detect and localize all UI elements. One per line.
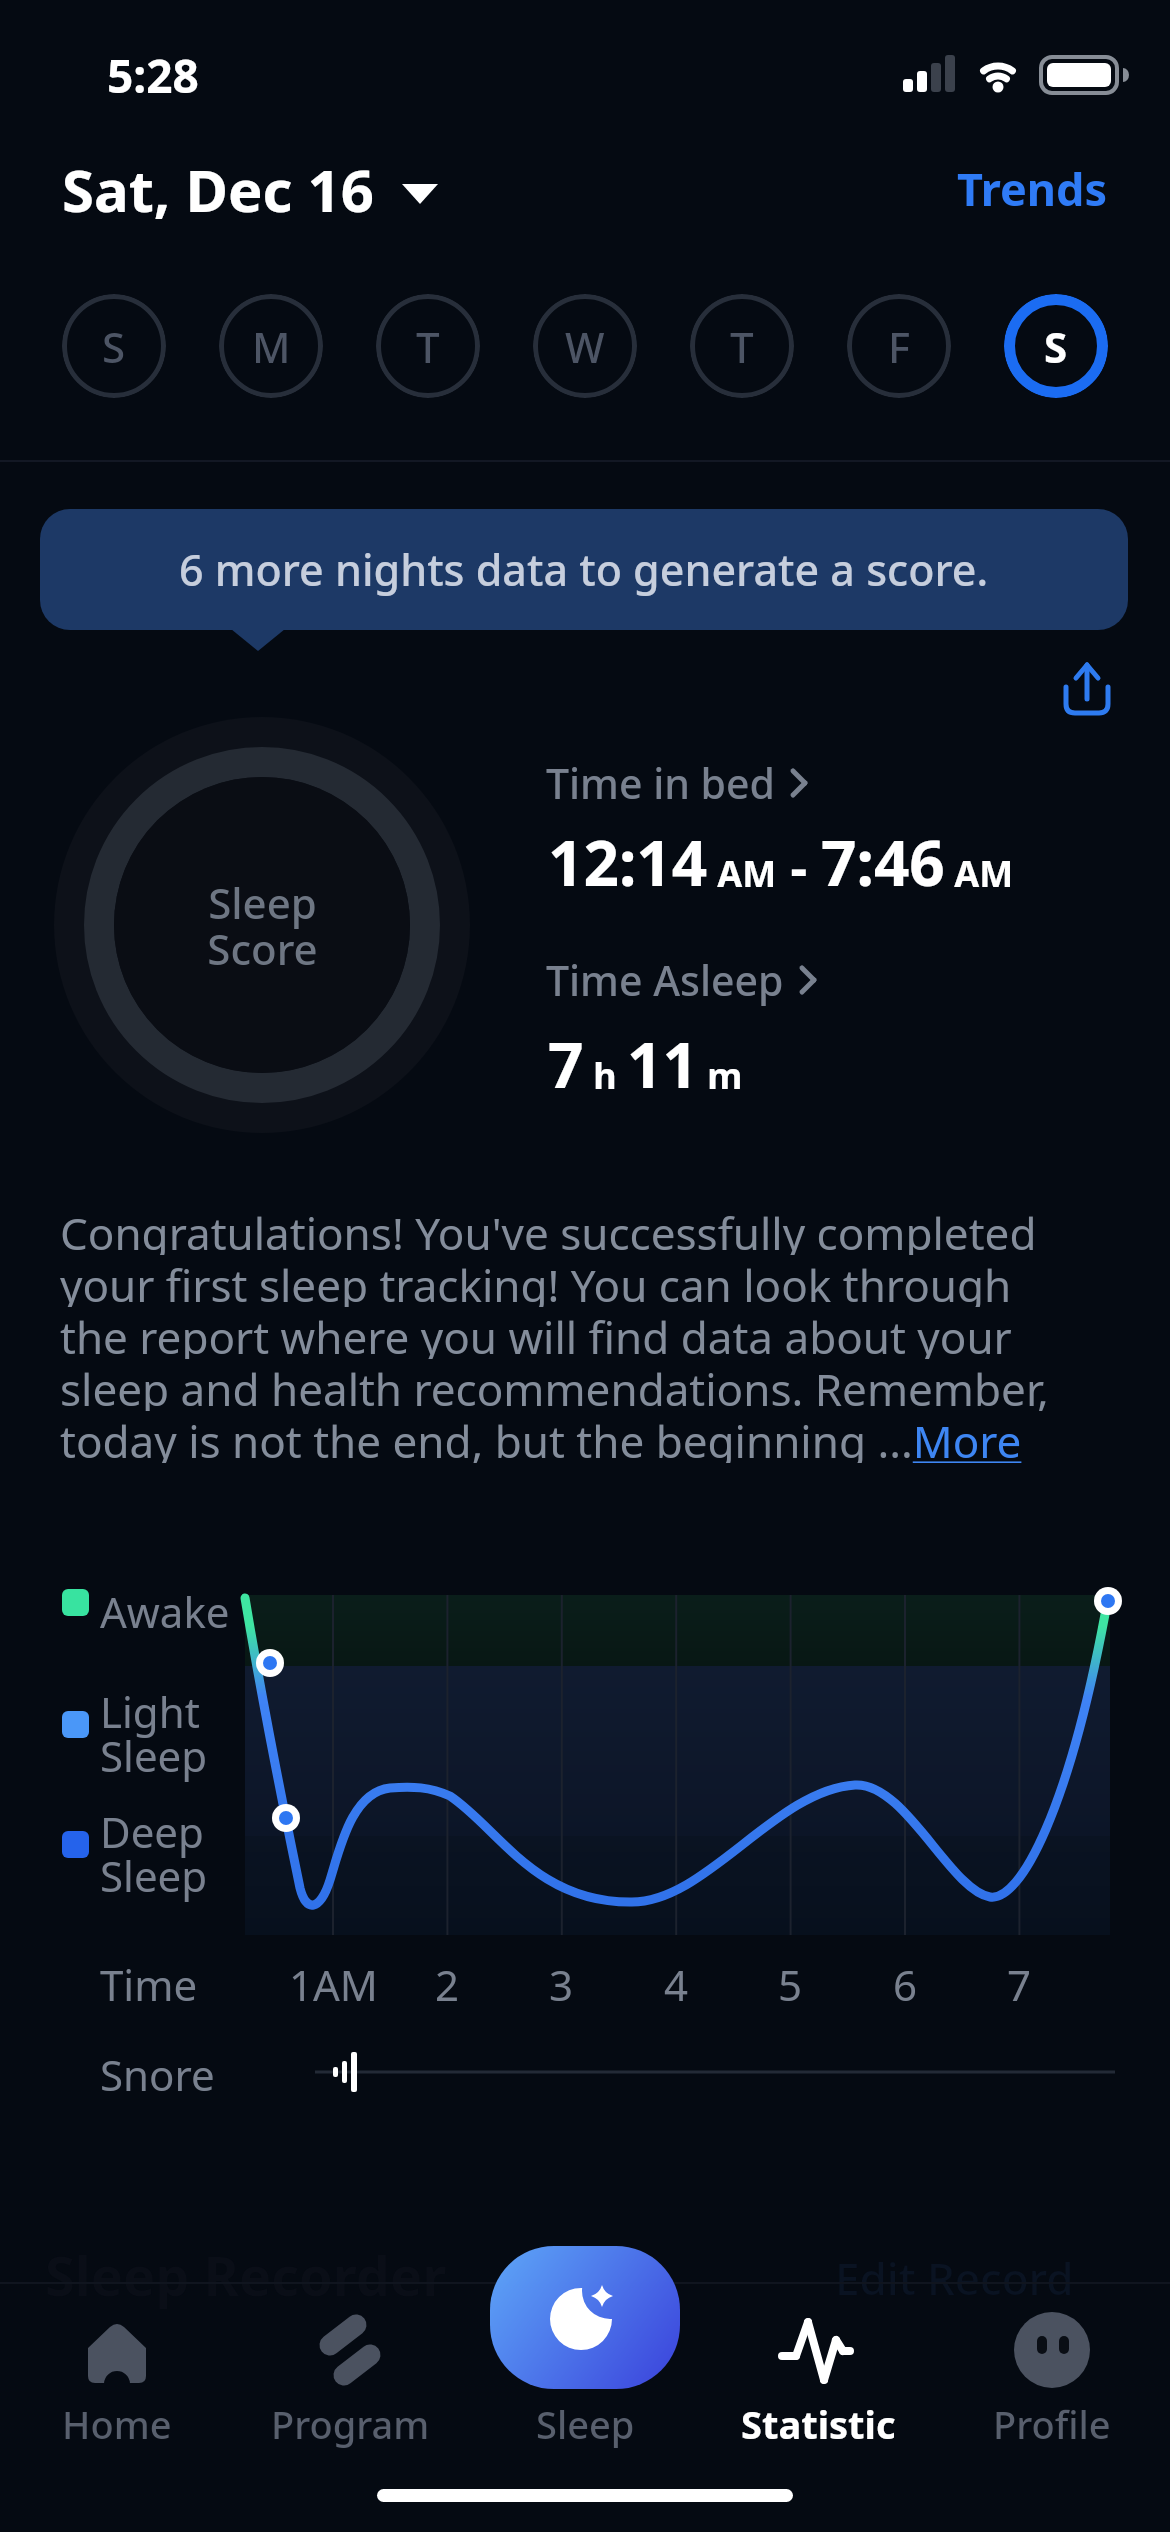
staticText: sleep and health recommendations. Rememb…	[60, 1359, 1049, 1411]
staticText: 2	[435, 1956, 460, 2013]
staticText: F	[888, 318, 911, 375]
staticText: Sat, Dec 16	[62, 150, 374, 229]
staticText: W	[565, 318, 605, 375]
staticText: Congratulations! You've successfully com…	[60, 1203, 1037, 1255]
staticText: 1AM	[289, 1956, 378, 2013]
button[interactable]: T	[690, 294, 794, 398]
button[interactable]: Profile	[962, 2310, 1142, 2450]
staticText: Statistic	[741, 2398, 896, 2450]
staticText: S	[1044, 318, 1068, 375]
staticText: Awake	[100, 1583, 230, 1640]
staticText: 3	[549, 1956, 574, 2013]
staticText: 11	[627, 1022, 698, 1106]
staticText: m	[698, 1051, 743, 1100]
staticText: Time Asleep	[546, 952, 784, 1008]
staticText: today is not the end, but the beginning …	[60, 1411, 1022, 1463]
staticText: Sleep	[536, 2398, 635, 2450]
staticText: 12:14	[548, 820, 708, 904]
staticText: -	[777, 831, 821, 902]
staticText: Home	[62, 2398, 172, 2450]
button[interactable]: M	[219, 294, 323, 398]
button[interactable]: W	[533, 294, 637, 398]
button[interactable]: Time Asleep	[546, 952, 820, 1008]
staticText: T	[416, 318, 440, 375]
button[interactable]: F	[847, 294, 951, 398]
button[interactable]: 6 more nights data to generate a score.	[40, 509, 1128, 630]
staticText: 7	[1007, 1956, 1032, 2013]
staticText: Edit Record	[835, 2248, 1074, 2308]
staticText: Deep Sleep	[100, 1803, 208, 1904]
staticText: 6	[893, 1956, 918, 2013]
staticText: Light Sleep	[100, 1683, 208, 1784]
button[interactable]: T	[376, 294, 480, 398]
button[interactable]: Time in bed	[546, 755, 811, 811]
staticText: Profile	[993, 2398, 1111, 2450]
staticText: your first sleep tracking! You can look …	[60, 1255, 1012, 1307]
button[interactable]: Sat, Dec 16	[62, 150, 414, 229]
staticText: Time	[100, 1956, 198, 2013]
staticText: AM	[708, 849, 777, 898]
button[interactable]: Sleep	[495, 2310, 675, 2450]
staticText: the report where you will find data abou…	[60, 1307, 1012, 1359]
button[interactable]: Home	[27, 2310, 207, 2450]
staticText: h	[584, 1051, 627, 1100]
button[interactable]: S	[1004, 294, 1108, 398]
button[interactable]: S	[62, 294, 166, 398]
button[interactable]: Trends	[957, 158, 1108, 219]
staticText: T	[730, 318, 754, 375]
button[interactable]	[490, 2246, 680, 2389]
staticText: Snore	[100, 2046, 215, 2103]
staticText: AM	[945, 849, 1014, 898]
button[interactable]: Statistic	[728, 2310, 908, 2450]
staticText: Trends	[957, 158, 1108, 219]
staticText: 5	[778, 1956, 803, 2013]
staticText: 6 more nights data to generate a score.	[179, 540, 989, 599]
button[interactable]: Program	[260, 2310, 440, 2450]
staticText: Time in bed	[546, 755, 775, 811]
staticText: Sleep Score	[207, 874, 318, 977]
staticText: Program	[271, 2398, 430, 2450]
button[interactable]	[1052, 652, 1122, 722]
staticText: M	[252, 318, 291, 375]
staticText: 7:46	[821, 820, 945, 904]
staticText: 4	[664, 1956, 689, 2013]
staticText: S	[102, 318, 126, 375]
staticText: 7	[548, 1022, 584, 1106]
staticText: 5:28	[107, 44, 199, 107]
